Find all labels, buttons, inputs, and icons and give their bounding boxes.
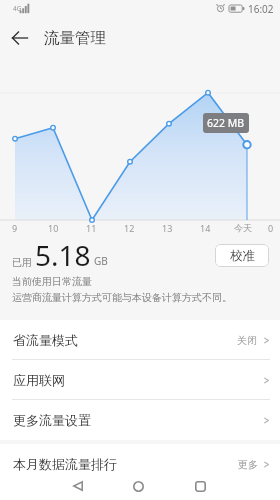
staticText: 校准: [230, 248, 255, 264]
staticText: 5.18: [35, 236, 91, 272]
staticText: 11: [86, 222, 97, 234]
staticText: 更多: [238, 458, 258, 471]
staticText: 622 MB: [207, 116, 245, 130]
staticText: GB: [94, 254, 108, 268]
staticText: 0: [268, 222, 274, 234]
staticText: 当前使用日常流量: [12, 275, 92, 288]
staticText: 省流量模式: [13, 332, 78, 348]
button[interactable]: 校准: [215, 244, 269, 267]
staticText: 本月数据流量排行: [13, 456, 117, 472]
staticText: 更多流量设置: [13, 412, 91, 428]
staticText: 应用联网: [13, 372, 65, 388]
button[interactable]: Recent apps: [178, 473, 223, 499]
staticText: 4G: [13, 4, 22, 13]
button[interactable]: 本月数据流量排行: [0, 444, 280, 484]
button[interactable]: Home: [116, 473, 161, 499]
staticText: 13: [162, 222, 173, 234]
staticText: 流量管理: [44, 28, 106, 48]
staticText: 14: [200, 222, 211, 234]
staticText: 16:02: [248, 2, 274, 16]
button[interactable]: Back: [55, 473, 100, 499]
button[interactable]: Back: [0, 18, 40, 58]
staticText: 12: [124, 222, 135, 234]
staticText: 今天: [234, 222, 252, 233]
staticText: 10: [48, 222, 59, 234]
staticText: 运营商流量计算方式可能与本设备计算方式不同。: [12, 291, 232, 304]
button[interactable]: 更多流量设置: [0, 400, 280, 440]
staticText: 9: [12, 222, 18, 234]
button[interactable]: 省流量模式: [0, 320, 280, 360]
staticText: 已用: [12, 256, 32, 269]
staticText: 关闭: [237, 334, 257, 347]
button[interactable]: 应用联网: [0, 360, 280, 400]
